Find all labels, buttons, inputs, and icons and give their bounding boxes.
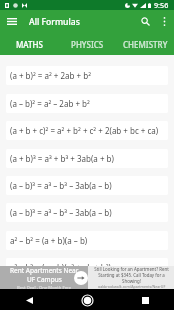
button[interactable]: CHEMISTRY xyxy=(116,33,174,55)
staticText: Rent Apartments Near xyxy=(10,266,79,275)
staticText: PHYSICS xyxy=(71,39,104,50)
staticText: a³ – b³ = (a – b)(a² + ab + b²) xyxy=(10,262,111,273)
button[interactable]: Open navigation drawer xyxy=(0,10,24,33)
button[interactable]: (a – b)³ = a³ – b³ – 3ab(a – b) xyxy=(6,203,168,222)
button[interactable]: MATHS xyxy=(0,33,58,55)
staticText: 9:56 xyxy=(154,0,169,10)
staticText: Best Deal - One Month Free xyxy=(17,285,72,289)
staticText: (a + b)² = a² + 2ab + b² xyxy=(10,70,91,81)
button[interactable]: Search xyxy=(135,10,155,33)
staticText: Still Looking for an Apartment? Rent Sta… xyxy=(94,266,169,284)
button[interactable]: Rent Apartments Near xyxy=(0,266,88,289)
staticText: (a – b)³ = a³ – b³ – 3ab(a – b) xyxy=(10,180,112,191)
staticText: a² – b² = (a + b)(a – b) xyxy=(10,235,88,246)
button[interactable]: Back xyxy=(19,290,39,310)
staticText: (a – b)³ = a³ – b³ – 3ab(a – b) xyxy=(10,207,112,218)
button[interactable]: a² – b² = (a + b)(a – b) xyxy=(6,231,168,250)
staticText: UF Campus xyxy=(27,275,62,284)
staticText: CHEMISTRY xyxy=(123,39,168,50)
button[interactable]: Still Looking for an Apartment? Rent Sta… xyxy=(88,266,174,289)
staticText: All Formulas xyxy=(29,16,80,28)
staticText: (a + b + c)² = a² + b² + c² + 2(ab + bc … xyxy=(10,125,159,136)
staticText: (a – b)² = a² – 2ab + b² xyxy=(10,98,90,109)
staticText: (a + b)³ = a³ + b³ + 3ab(a + b) xyxy=(10,153,114,164)
button[interactable]: (a + b)² = a² + 2ab + b² xyxy=(6,66,168,85)
button[interactable]: More options xyxy=(155,10,173,33)
button[interactable]: (a – b)² = a² – 2ab + b² xyxy=(6,94,168,113)
button[interactable]: Recent apps xyxy=(135,290,155,310)
button[interactable]: (a + b)³ = a³ + b³ + 3ab(a + b) xyxy=(6,149,168,168)
button[interactable]: PHYSICS xyxy=(58,33,116,55)
staticText: oakbrookwalk.com/Apartments/NearUF xyxy=(98,284,166,289)
button[interactable]: Next advertisement xyxy=(74,271,88,285)
staticText: MATHS xyxy=(16,39,43,50)
button[interactable]: (a – b)³ = a³ – b³ – 3ab(a – b) xyxy=(6,176,168,195)
button[interactable]: (a + b + c)² = a² + b² + c² + 2(ab + bc … xyxy=(6,121,168,140)
button[interactable]: a³ – b³ = (a – b)(a² + ab + b²) xyxy=(6,258,168,277)
button[interactable]: Home xyxy=(77,290,97,310)
